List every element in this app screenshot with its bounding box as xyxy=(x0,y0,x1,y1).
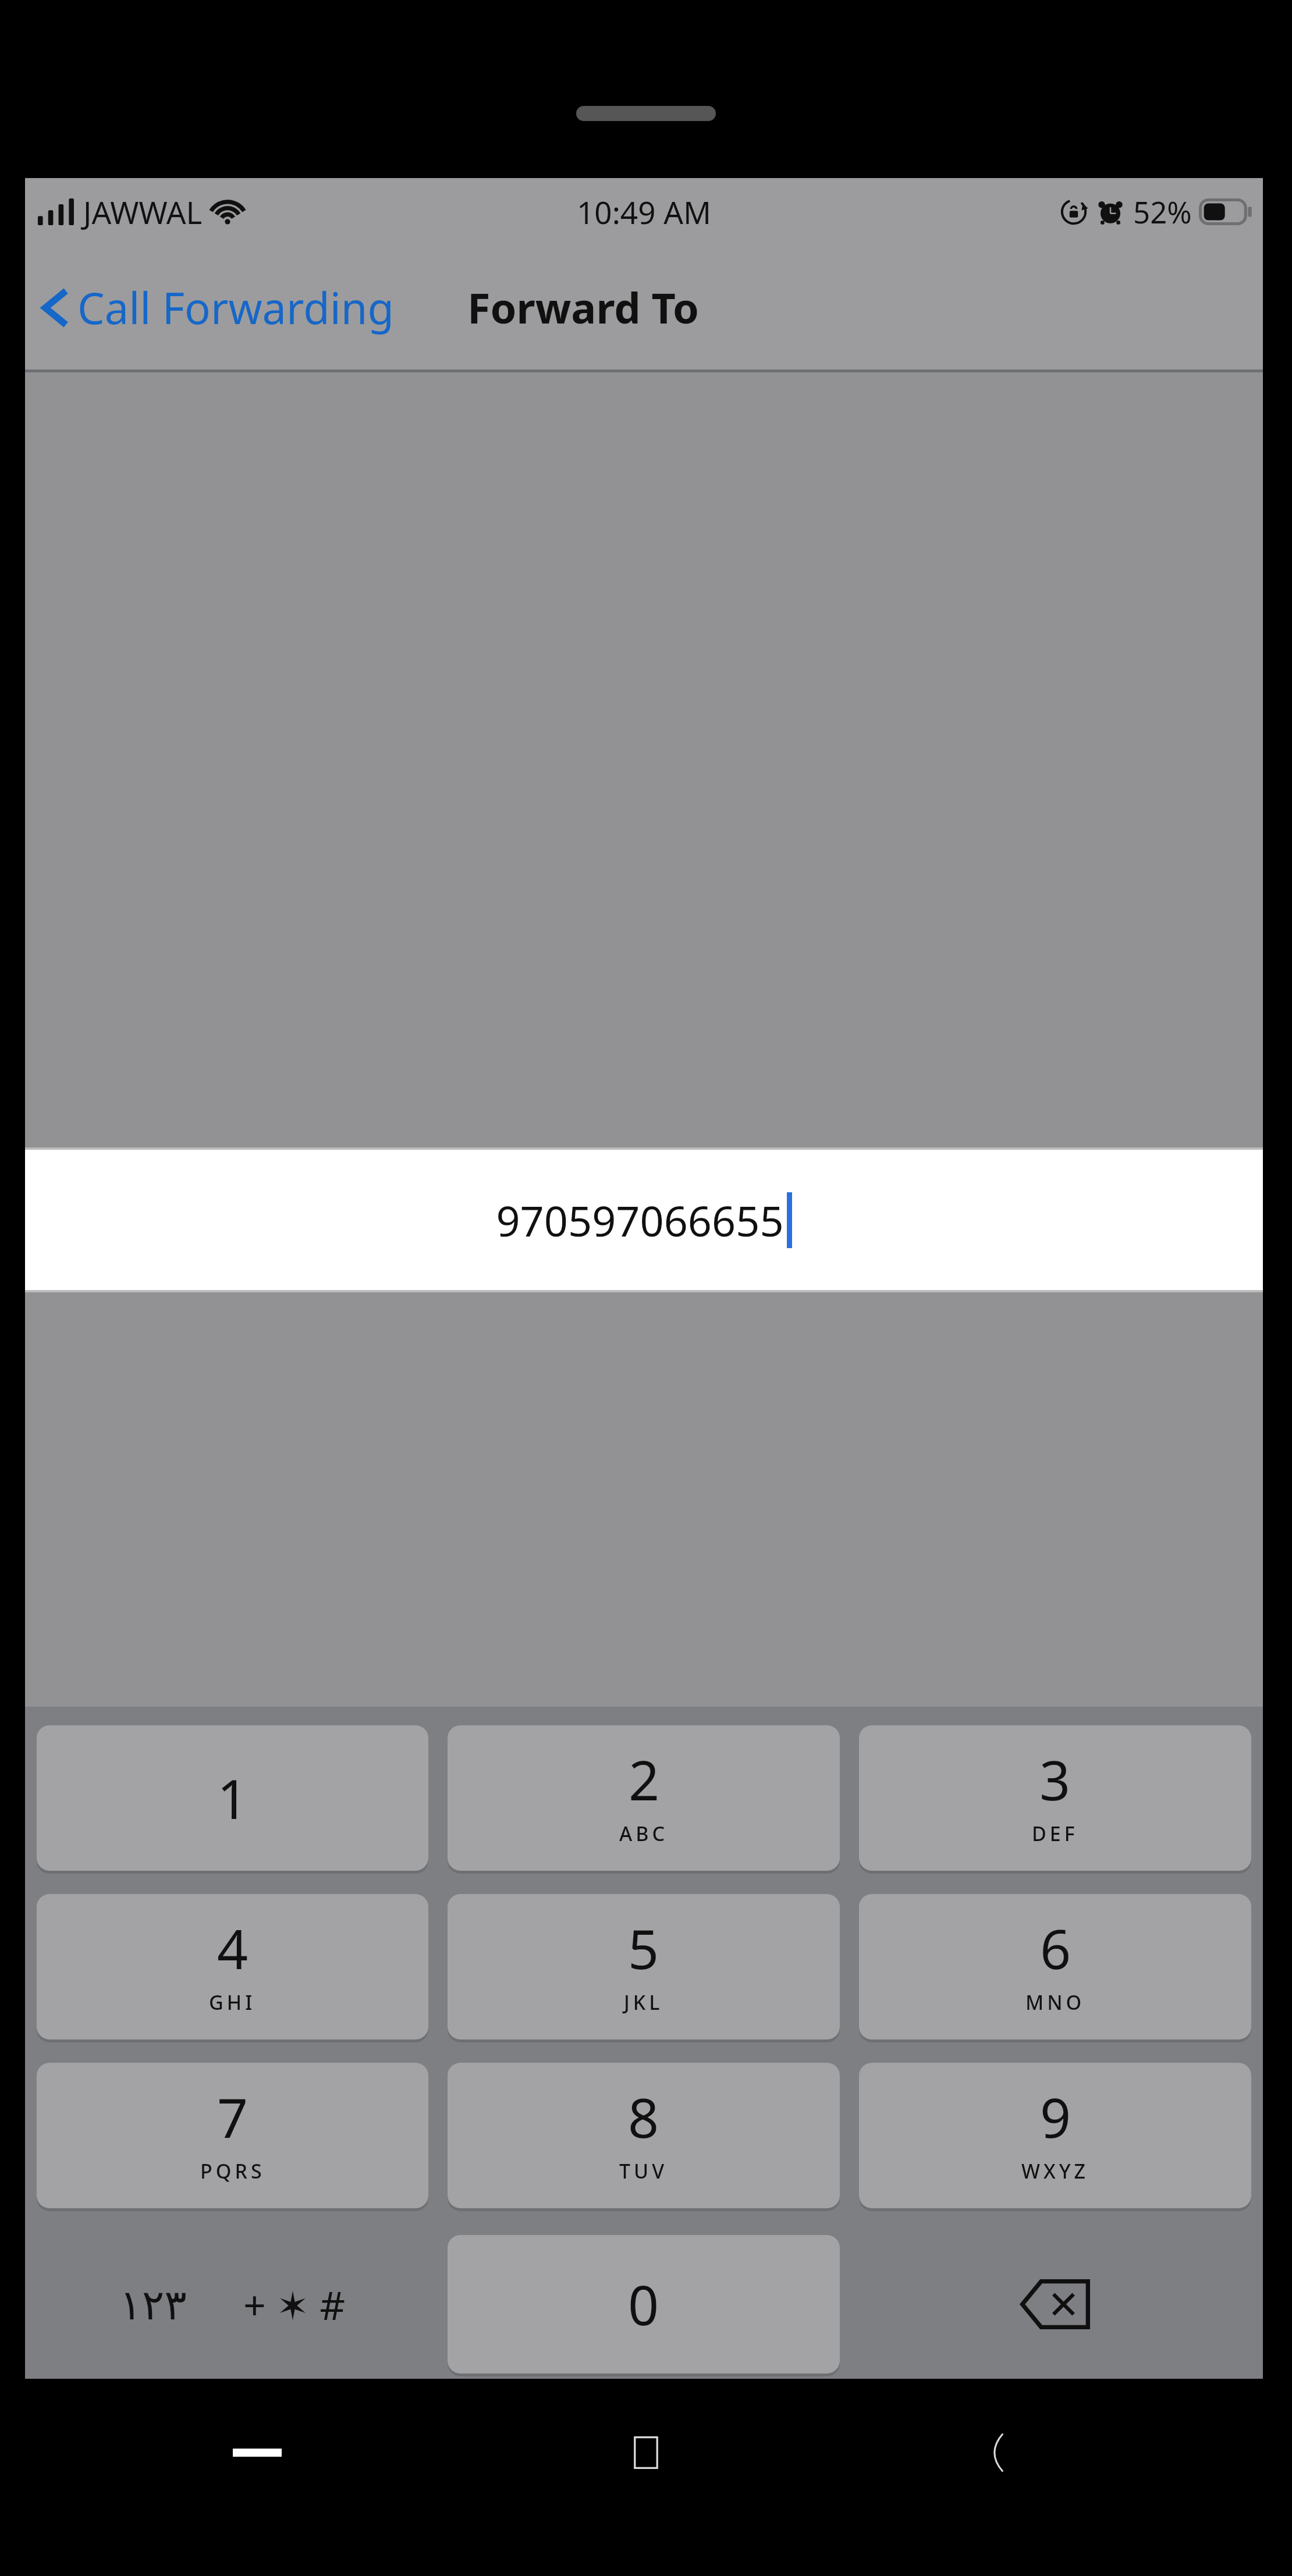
staticText: Call Forwarding xyxy=(77,278,395,337)
button[interactable]: 8 xyxy=(448,2063,840,2208)
button[interactable]: 5 xyxy=(448,1894,840,2040)
staticText: + ✶ # xyxy=(243,2277,346,2332)
button[interactable]: 970597066655 xyxy=(25,1150,1263,1290)
staticText: 10:49 AM xyxy=(577,191,712,233)
button[interactable]: Back xyxy=(978,2431,1013,2474)
button[interactable]: 4 xyxy=(37,1894,428,2040)
staticText: JAWWAL xyxy=(83,191,203,233)
staticText: GHI xyxy=(209,1989,256,2016)
button[interactable]: 2 xyxy=(448,1725,840,1871)
staticText: JKL xyxy=(624,1989,663,2016)
staticText: 3 xyxy=(1039,1743,1071,1817)
button[interactable]: Home xyxy=(629,2435,663,2470)
staticText: 6 xyxy=(1040,1911,1071,1985)
staticText: ABC xyxy=(619,1820,669,1847)
staticText: MNO xyxy=(1025,1989,1085,2016)
staticText: PQRS xyxy=(200,2158,265,2184)
staticText: WXYZ xyxy=(1021,2158,1089,2184)
staticText: 8 xyxy=(628,2080,659,2154)
button[interactable]: Delete xyxy=(859,2232,1251,2377)
staticText: 2 xyxy=(629,1743,660,1817)
button[interactable]: 7 xyxy=(37,2063,428,2208)
staticText: TUV xyxy=(619,2158,668,2184)
button[interactable]: Call Forwarding xyxy=(25,268,400,347)
button[interactable]: 3 xyxy=(859,1725,1251,1871)
staticText: 970597066655 xyxy=(496,1192,784,1249)
staticText: 9 xyxy=(1040,2080,1071,2154)
button[interactable]: 0 xyxy=(448,2235,840,2374)
button[interactable]: ١٢٣ xyxy=(37,2232,428,2377)
staticText: 5 xyxy=(628,1911,659,1985)
button[interactable]: 9 xyxy=(859,2063,1251,2208)
staticText: 4 xyxy=(217,1911,249,1985)
button[interactable]: 6 xyxy=(859,1894,1251,2040)
staticText: 7 xyxy=(217,2080,249,2154)
staticText: 0 xyxy=(628,2268,659,2342)
staticText: DEF xyxy=(1032,1820,1078,1847)
staticText: 1 xyxy=(217,1761,249,1835)
staticText: Forward To xyxy=(467,279,699,336)
button[interactable]: 1 xyxy=(37,1725,428,1871)
staticText: 52% xyxy=(1133,191,1192,232)
staticText: ١٢٣ xyxy=(119,2280,187,2329)
